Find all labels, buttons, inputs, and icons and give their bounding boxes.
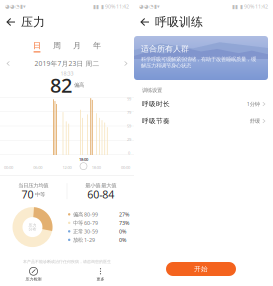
button[interactable]: 日 (27, 40, 47, 53)
button[interactable]: 年 (87, 40, 107, 53)
staticText: 压力 (28, 223, 36, 227)
staticText: 呼吸时长 (142, 100, 170, 108)
staticText: 压力 (21, 15, 45, 29)
staticText: 偏高 (74, 82, 84, 88)
staticText: 0% (119, 236, 126, 243)
button[interactable]: 月 (67, 40, 87, 53)
staticText: 舒缓 (250, 118, 260, 124)
staticText: ◕◕◔▮▾ (139, 3, 160, 10)
staticText: 06:00 (33, 165, 42, 170)
staticText: 0 (128, 150, 130, 156)
button[interactable]: 更多 (67, 266, 134, 283)
button[interactable]: Next day (120, 58, 132, 69)
staticText: 训练设置 (142, 87, 162, 94)
staticText: 82 (50, 72, 72, 98)
staticText: 00:00 (4, 165, 13, 170)
button[interactable]: Previous day (2, 58, 14, 69)
staticText: 70 (22, 187, 34, 201)
staticText: 27% (119, 211, 129, 218)
staticText: 中等 (35, 191, 45, 198)
button[interactable]: Back (134, 13, 155, 31)
staticText: 偏高 80-99 (73, 211, 98, 218)
staticText: 年 (93, 41, 101, 50)
button[interactable]: 压力检测 (0, 266, 67, 283)
staticText: 29 (127, 137, 131, 142)
staticText: 呼吸训练 (155, 15, 203, 29)
staticText: ▮▮ ▮ 90% 11:42 (93, 3, 129, 10)
staticText: 12:00 (62, 165, 71, 170)
staticText: ▮▮ ▮ 90% 11:42 (232, 3, 268, 10)
button[interactable]: 开始 (166, 262, 236, 276)
staticText: 科学呼吸可缓解紧张情绪，有助于改善睡眠质量，缓解压力和调节身心状态 (141, 56, 256, 69)
staticText: 59 (127, 123, 131, 129)
staticText: 60-84 (87, 187, 114, 201)
staticText: 压力检测 (25, 277, 41, 282)
staticText: 日 (33, 41, 41, 50)
staticText: 79 (127, 110, 131, 115)
staticText: 18:33 (60, 70, 73, 77)
button[interactable]: 周 (47, 40, 67, 53)
staticText: 呼吸节奏 (142, 117, 170, 125)
staticText: 开始 (194, 265, 208, 273)
button[interactable]: 呼吸节奏 (134, 113, 273, 130)
staticText: 1分钟 (247, 100, 260, 108)
staticText: 99 (127, 96, 131, 102)
button[interactable]: Back (0, 13, 21, 31)
staticText: 更多 (96, 277, 104, 282)
staticText: 月 (73, 41, 81, 50)
staticText: 0% (119, 228, 126, 235)
staticText: 周 (53, 41, 61, 50)
staticText: 18:00 (92, 165, 101, 170)
staticText: 18:00 (79, 157, 88, 162)
staticText: 2019年7月23日 周二 (34, 59, 99, 68)
staticText: 73% (119, 219, 129, 226)
staticText: 本产品不能诊断或治疗任何疾病，请咨询您的医生 (23, 259, 111, 264)
staticText: 中等 60-79 (73, 219, 98, 226)
staticText: 当日压力均值 (18, 182, 48, 189)
staticText: 分布 (28, 227, 36, 231)
staticText: 正常 30-59 (73, 228, 98, 235)
button[interactable]: 呼吸时长 (134, 96, 273, 113)
staticText: 适合所有人群 (141, 44, 189, 54)
staticText: 00:00 (121, 165, 130, 170)
staticText: 最小值·最大值 (85, 182, 116, 189)
staticText: 放松 1-29 (73, 236, 95, 243)
staticText: ◕◕◔▮▾ (5, 3, 26, 10)
